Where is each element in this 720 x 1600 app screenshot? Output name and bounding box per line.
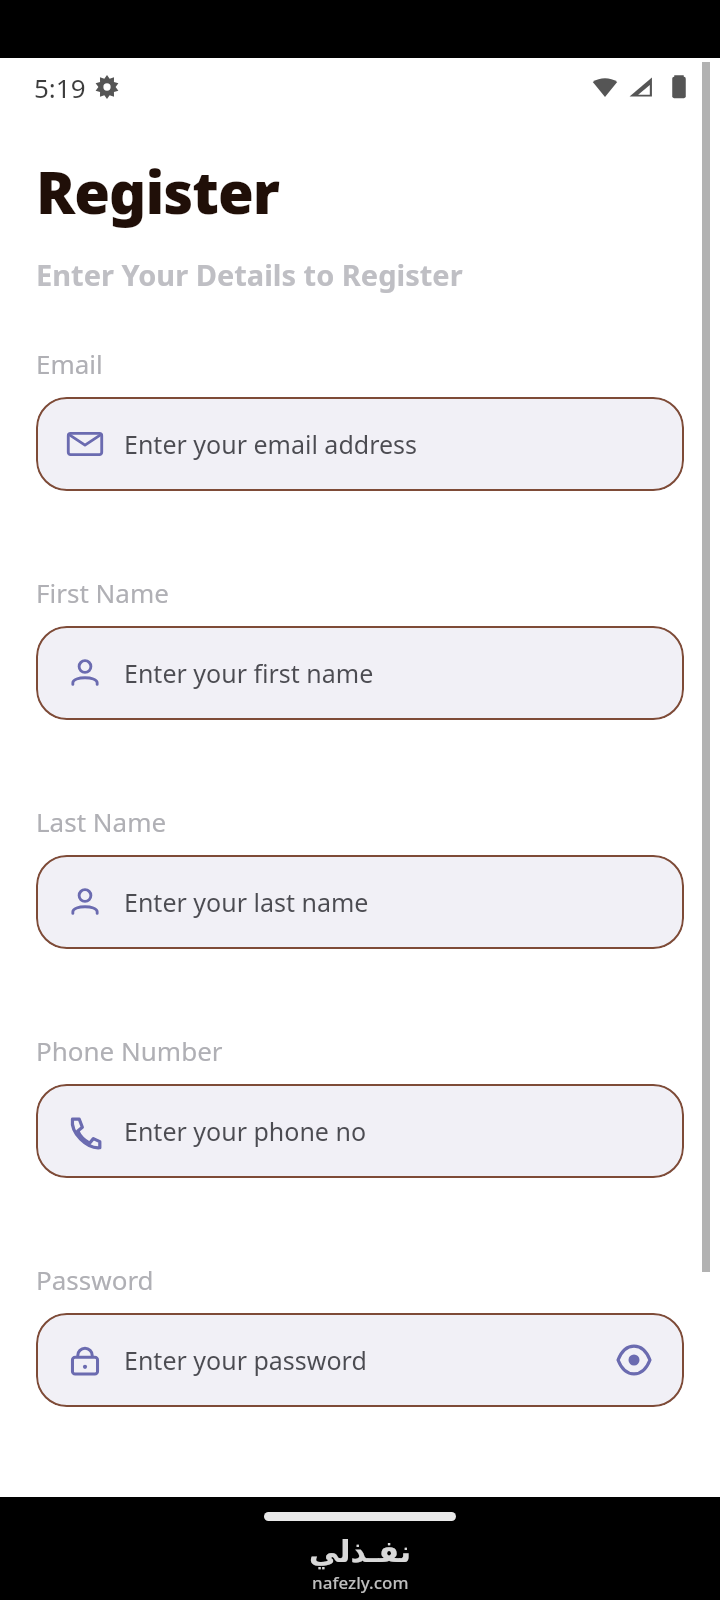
staticText: Register xyxy=(36,152,279,231)
button[interactable]: Enter your first name xyxy=(36,626,684,720)
staticText: First Name xyxy=(36,575,169,610)
staticText: Email xyxy=(36,346,103,381)
button[interactable]: Show password xyxy=(606,1332,662,1388)
staticText: Select Date xyxy=(36,1491,173,1526)
button[interactable]: Enter your email address xyxy=(36,397,684,491)
staticText: Enter your first name xyxy=(124,656,374,690)
staticText: Password xyxy=(36,1262,154,1297)
button[interactable]: Enter your phone no xyxy=(36,1084,684,1178)
staticText: Enter your password xyxy=(124,1343,367,1377)
staticText: Enter your last name xyxy=(124,885,369,919)
staticText: 5:19 xyxy=(34,70,86,105)
staticText: Last Name xyxy=(36,804,167,839)
staticText: Enter your email address xyxy=(124,427,418,461)
staticText: Enter Your Details to Register xyxy=(36,255,463,294)
staticText: Phone Number xyxy=(36,1033,223,1068)
staticText: nafezly.com xyxy=(312,1571,409,1594)
button[interactable]: Enter your password xyxy=(36,1313,684,1407)
button[interactable]: Enter your last name xyxy=(36,855,684,949)
button[interactable]: Select Date xyxy=(36,1552,684,1600)
staticText: Enter your phone no xyxy=(124,1114,367,1148)
staticText: نفـذلي xyxy=(309,1534,412,1569)
